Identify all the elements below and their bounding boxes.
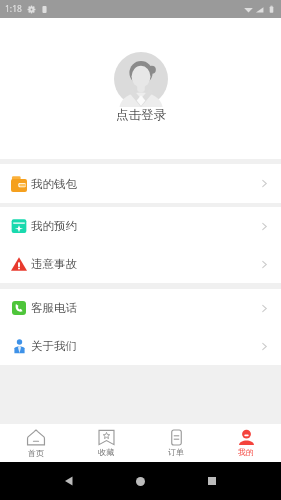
button[interactable]: 我的	[211, 429, 281, 457]
staticText: 我的钱包	[31, 177, 77, 191]
button[interactable]: 我的钱包	[0, 164, 281, 203]
button[interactable]: 客服电话	[0, 289, 281, 327]
button[interactable]: 关于我们	[0, 327, 281, 365]
staticText: 订单	[168, 447, 184, 457]
staticText: 1:18	[5, 3, 22, 15]
button[interactable]: Back	[58, 470, 80, 492]
button[interactable]: 订单	[141, 429, 211, 457]
button[interactable]: Home	[129, 470, 151, 492]
button[interactable]: Recents	[201, 470, 223, 492]
staticText: 我的	[238, 447, 254, 457]
button[interactable]: 违意事故	[0, 245, 281, 283]
staticText: 关于我们	[31, 339, 77, 353]
button[interactable]: 收藏	[71, 429, 141, 457]
staticText: 违意事故	[31, 257, 77, 271]
staticText: 收藏	[98, 447, 114, 457]
button[interactable]: 点击登录	[114, 52, 168, 123]
staticText: 点击登录	[116, 107, 166, 123]
staticText: 客服电话	[31, 301, 77, 315]
button[interactable]: 我的预约	[0, 207, 281, 245]
staticText: 首页	[28, 448, 44, 458]
staticText: 我的预约	[31, 219, 77, 233]
button[interactable]: 首页	[0, 429, 71, 458]
